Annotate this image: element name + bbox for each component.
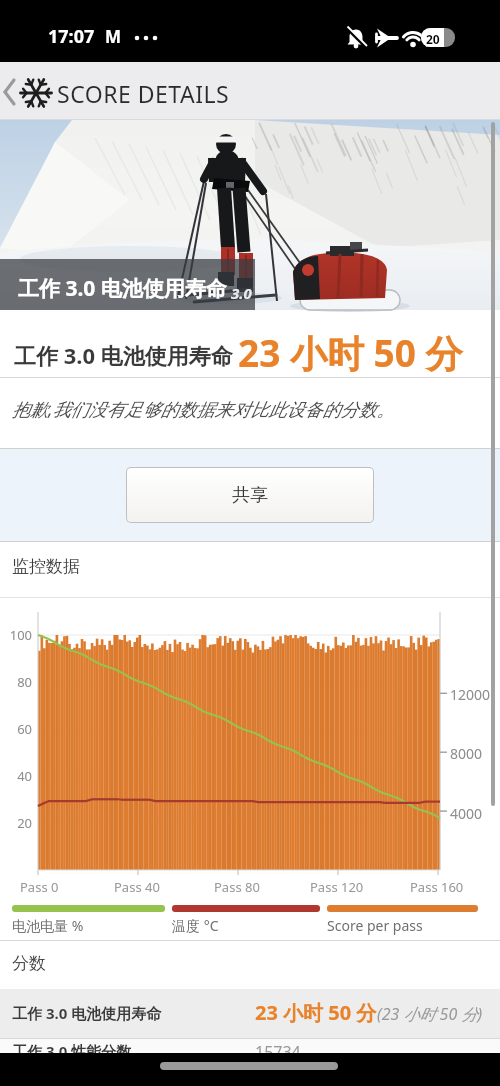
button[interactable]: 共享 xyxy=(127,468,373,522)
staticText: 6 xyxy=(425,38,430,49)
button[interactable] xyxy=(0,989,500,1038)
staticText: 工作 3.0 性能分数 xyxy=(12,1041,132,1061)
button[interactable] xyxy=(0,1039,500,1053)
staticText: Pass 120 xyxy=(310,878,364,896)
button[interactable] xyxy=(160,1062,338,1070)
staticText: Pass 40 xyxy=(114,878,160,896)
staticText: 共享 xyxy=(232,484,268,507)
staticText: Pass 160 xyxy=(410,878,464,896)
staticText: 20 xyxy=(2,814,32,832)
staticText: 40 xyxy=(2,767,32,785)
staticText: 100 xyxy=(2,626,32,644)
staticText: M xyxy=(105,25,122,48)
staticText: 温度 °C xyxy=(172,916,219,935)
staticText: 15734 xyxy=(255,1041,301,1063)
button[interactable] xyxy=(2,79,18,105)
staticText: 60 xyxy=(2,720,32,738)
staticText: 工作 3.0 电池使用寿命 xyxy=(12,1003,162,1023)
staticText: 4000 xyxy=(450,804,483,823)
staticText: 工作 3.0 电池使用寿命 xyxy=(14,340,233,370)
staticText: 抱歉,我们没有足够的数据来对比此设备的分数。 xyxy=(12,397,395,422)
staticText: 23 小时 50 分 xyxy=(255,999,377,1026)
staticText: 20 xyxy=(426,31,440,47)
staticText: 8000 xyxy=(450,744,483,763)
staticText: 监控数据 xyxy=(12,556,80,577)
staticText: SCORE DETAILS xyxy=(57,78,230,109)
staticText: Pass 0 xyxy=(20,878,59,896)
staticText: Pass 80 xyxy=(214,878,260,896)
staticText: 分数 xyxy=(12,953,46,974)
staticText: 电池电量 % xyxy=(12,916,84,935)
staticText: Score per pass xyxy=(327,916,423,935)
staticText: 23 小时 50 分 xyxy=(238,327,463,378)
staticText: 17:07 xyxy=(48,24,95,49)
staticText: 工作 3.0 电池使用寿命 xyxy=(18,274,227,303)
staticText: (23 小时 50 分) xyxy=(377,1003,483,1025)
staticText: 80 xyxy=(2,673,32,691)
staticText: 3.0 xyxy=(231,283,252,303)
staticText: 12000 xyxy=(450,685,491,704)
